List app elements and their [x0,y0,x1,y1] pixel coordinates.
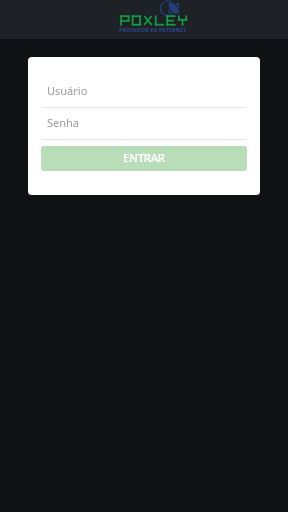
staticText: ENTRAR [123,150,165,166]
staticText: Senha [47,115,80,130]
button[interactable]: Senha [41,109,247,140]
button[interactable]: ENTRAR [41,146,247,171]
staticText: Usuário [47,83,88,98]
staticText: PROVEDOR DE INTERNET [119,26,187,33]
button[interactable]: Usuário [41,77,247,108]
other: Poxley logo [118,0,188,36]
